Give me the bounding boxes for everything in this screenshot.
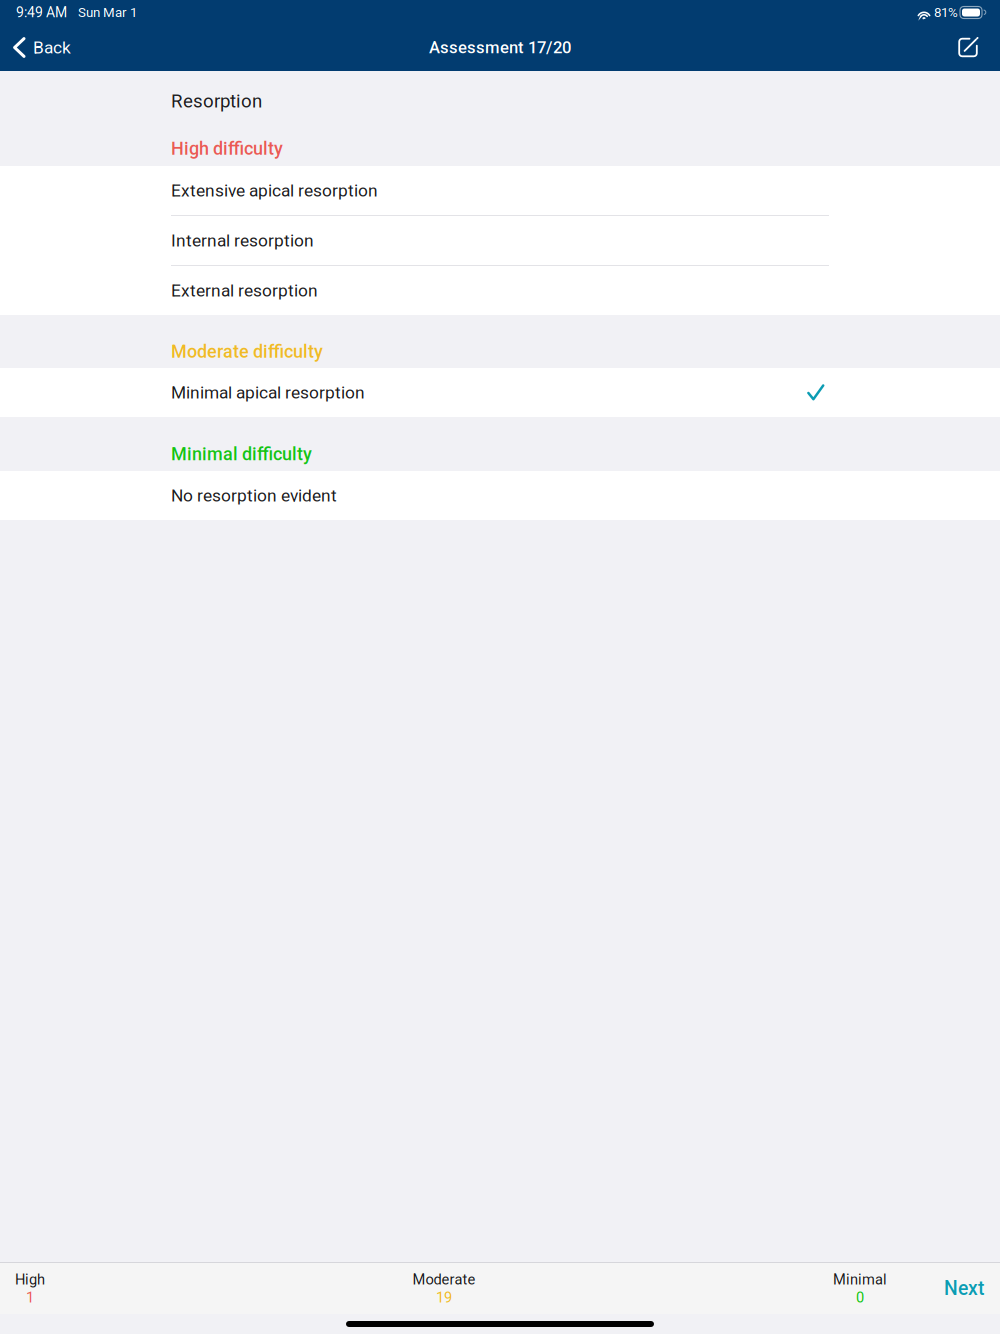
staticText: Assessment 17/20 — [429, 38, 571, 57]
staticText: No resorption evident — [171, 485, 337, 506]
staticText: High — [15, 1271, 45, 1288]
staticText: 81% — [934, 5, 958, 20]
staticText: Moderate — [412, 1271, 475, 1288]
button[interactable]: Extensive apical resorption — [0, 166, 1000, 216]
staticText: High difficulty — [171, 138, 283, 159]
staticText: 1 — [26, 1289, 34, 1306]
staticText: Minimal apical resorption — [171, 382, 365, 403]
button[interactable]: Internal resorption — [0, 216, 1000, 266]
button[interactable]: External resorption — [0, 266, 1000, 315]
staticText: External resorption — [171, 280, 318, 301]
button[interactable]: Back — [0, 24, 81, 70]
staticText: Sun Mar 1 — [78, 5, 137, 20]
staticText: Minimal difficulty — [171, 443, 312, 465]
staticText: 9:49 AM — [16, 4, 67, 21]
button[interactable]: Minimal apical resorption — [0, 368, 1000, 417]
staticText: Back — [33, 37, 71, 58]
staticText: Extensive apical resorption — [171, 180, 378, 201]
staticText: Minimal — [833, 1271, 887, 1288]
staticText: Internal resorption — [171, 230, 314, 251]
button[interactable]: No resorption evident — [0, 471, 1000, 520]
button[interactable]: Next — [928, 1263, 1000, 1314]
staticText: 0 — [856, 1289, 864, 1306]
staticText: Resorption — [171, 90, 262, 112]
button[interactable]: Compose note — [947, 24, 1000, 70]
staticText: 19 — [436, 1289, 452, 1306]
staticText: Next — [944, 1277, 984, 1300]
staticText: Moderate difficulty — [171, 341, 323, 362]
